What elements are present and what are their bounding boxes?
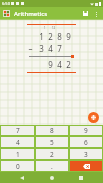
button[interactable]: 0 xyxy=(1,161,34,171)
staticText: 6 xyxy=(84,138,88,147)
staticText: 1 xyxy=(16,150,20,159)
button[interactable]: More options xyxy=(91,9,101,19)
staticText: 9 xyxy=(46,59,55,70)
button[interactable]: Recents xyxy=(74,172,88,183)
button[interactable]: 2 xyxy=(36,149,68,159)
button[interactable]: . xyxy=(36,161,68,171)
staticText: 2 xyxy=(50,150,54,159)
button[interactable]: 1 xyxy=(1,149,34,159)
button[interactable]: Save xyxy=(80,8,91,19)
staticText: 4 xyxy=(46,43,55,54)
button[interactable]: App icon xyxy=(3,10,10,17)
staticText: 0 xyxy=(16,162,20,171)
button[interactable]: Delete xyxy=(70,161,102,171)
staticText: 3 xyxy=(37,43,46,54)
staticText: 12 xyxy=(49,26,58,30)
staticText: 7 xyxy=(55,43,64,54)
button[interactable]: Back xyxy=(15,172,29,183)
staticText: 8 xyxy=(55,31,64,42)
staticText: 1 xyxy=(37,31,46,42)
button[interactable]: 7 xyxy=(1,126,34,135)
button[interactable]: 8 xyxy=(36,126,68,135)
button[interactable]: 5 xyxy=(36,137,68,147)
staticText: 6:50 xyxy=(2,1,10,6)
button[interactable]: 3 xyxy=(70,149,102,159)
staticText: – xyxy=(27,43,34,54)
button[interactable]: 4 xyxy=(1,137,34,147)
staticText: 3 xyxy=(84,150,88,159)
staticText: 1 xyxy=(40,26,49,30)
staticText: 4 xyxy=(16,138,20,147)
button[interactable]: 6 xyxy=(70,137,102,147)
staticText: 5 xyxy=(50,138,54,147)
staticText: . xyxy=(51,162,53,171)
staticText: 8 xyxy=(50,126,54,135)
staticText: 9 xyxy=(64,31,73,42)
staticText: Arithmetics xyxy=(14,10,48,18)
staticText: 2 xyxy=(64,59,73,70)
button[interactable]: Home xyxy=(45,172,59,183)
staticText: 2 xyxy=(46,31,55,42)
button[interactable]: 9 xyxy=(70,126,102,135)
staticText: 4 xyxy=(55,59,64,70)
button[interactable]: Next problem xyxy=(88,112,99,123)
staticText: 9 xyxy=(84,126,88,135)
staticText: 7 xyxy=(16,126,20,135)
